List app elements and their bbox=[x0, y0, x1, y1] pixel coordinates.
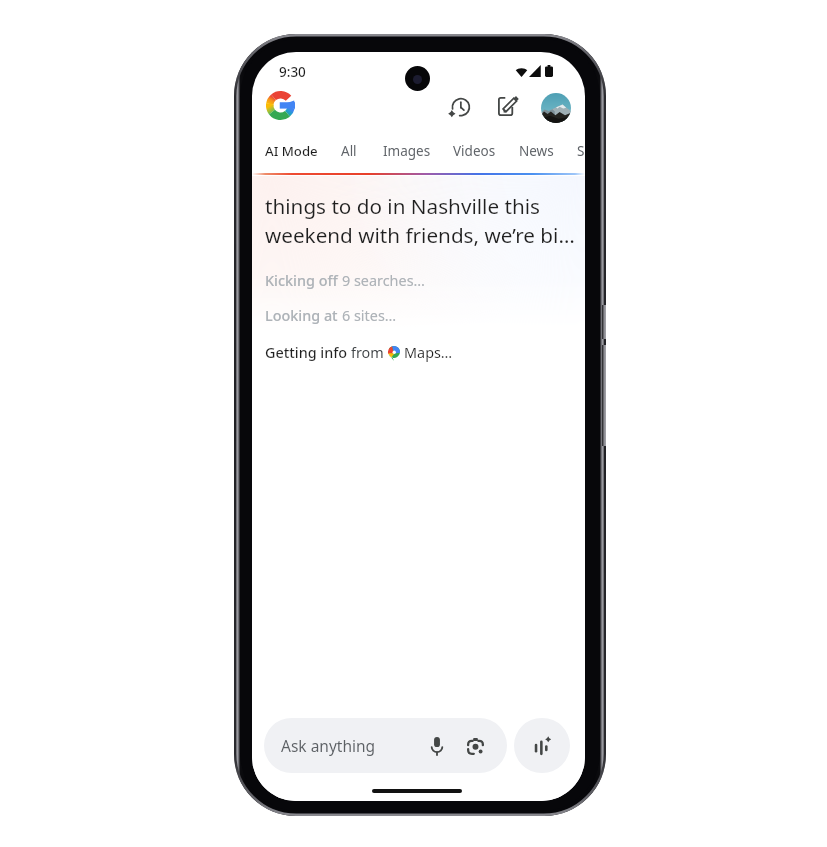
staticText: 6 sites… bbox=[342, 306, 397, 326]
staticText: things to do in Nashville this weekend w… bbox=[265, 192, 575, 249]
button[interactable]: News bbox=[509, 130, 564, 172]
button[interactable]: Voice search bbox=[422, 731, 452, 761]
staticText: Kicking off bbox=[265, 271, 342, 291]
staticText: Maps… bbox=[404, 343, 453, 363]
button[interactable]: Shopping bbox=[567, 130, 585, 172]
staticText: 9 searches… bbox=[342, 271, 425, 291]
button[interactable]: Google Account bbox=[536, 88, 576, 128]
staticText: Videos bbox=[453, 142, 496, 160]
staticText: from bbox=[351, 343, 388, 363]
staticText: All bbox=[341, 142, 357, 160]
button[interactable]: Ask anything bbox=[264, 718, 507, 773]
staticText: Looking at bbox=[265, 306, 342, 326]
button[interactable]: Google bbox=[258, 83, 302, 127]
button[interactable]: Google Live bbox=[514, 718, 570, 773]
button[interactable]: Images bbox=[373, 130, 441, 172]
button[interactable]: All bbox=[331, 130, 367, 172]
staticText: News bbox=[519, 142, 554, 160]
button[interactable]: Google Lens bbox=[460, 731, 490, 761]
staticText: AI Mode bbox=[265, 142, 318, 160]
button[interactable]: New search bbox=[488, 88, 528, 128]
staticText: Shopping bbox=[577, 142, 585, 160]
staticText: Images bbox=[383, 142, 431, 160]
staticText: Getting info bbox=[265, 343, 351, 363]
staticText: Ask anything bbox=[281, 735, 376, 756]
staticText: 9:30 bbox=[279, 63, 306, 81]
button[interactable]: Search history bbox=[439, 88, 479, 128]
button[interactable]: Videos bbox=[443, 130, 506, 172]
button[interactable]: AI Mode bbox=[255, 130, 328, 172]
